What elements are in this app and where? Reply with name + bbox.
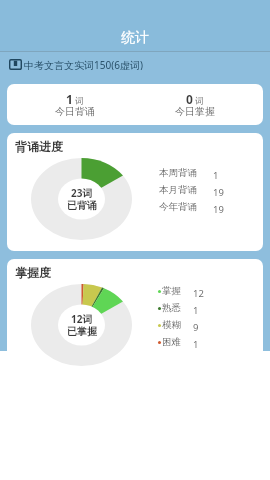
staticText: 今日背诵 xyxy=(55,105,95,118)
staticText: 词 xyxy=(195,96,204,107)
button[interactable]: Word book xyxy=(9,58,143,70)
staticText: 统计 xyxy=(121,29,149,47)
staticText: 词 xyxy=(75,96,84,107)
button[interactable]: 困难 xyxy=(158,336,263,348)
staticText: 1 xyxy=(213,169,219,181)
staticText: 1 xyxy=(193,304,199,316)
button[interactable]: 本月背诵 xyxy=(159,184,263,196)
button[interactable]: 掌握 xyxy=(158,285,263,297)
staticText: 中考文言文实词150(6虚词) xyxy=(24,58,143,70)
staticText: 19 xyxy=(213,186,224,198)
staticText: 1 xyxy=(193,338,199,350)
staticText: 熟悉 xyxy=(162,302,181,314)
staticText: 19 xyxy=(213,203,224,215)
staticText: 已背诵 xyxy=(67,199,97,212)
staticText: 困难 xyxy=(162,336,181,348)
staticText: 今日掌握 xyxy=(175,105,215,118)
staticText: 1 xyxy=(66,91,73,107)
staticText: 掌握 xyxy=(162,285,181,297)
staticText: 今年背诵 xyxy=(159,201,197,213)
other: Word book xyxy=(9,59,22,70)
staticText: 本周背诵 xyxy=(159,167,197,179)
staticText: 9 xyxy=(193,321,199,333)
staticText: 12 xyxy=(193,287,204,299)
staticText: 掌握度 xyxy=(15,265,51,280)
staticText: 0 xyxy=(186,91,193,107)
staticText: 已掌握 xyxy=(67,325,97,338)
staticText: 本月背诵 xyxy=(159,184,197,196)
staticText: 背诵进度 xyxy=(15,139,63,154)
button[interactable]: 0 xyxy=(135,84,255,125)
staticText: 模糊 xyxy=(162,319,181,331)
button[interactable]: 今年背诵 xyxy=(159,201,263,213)
button[interactable]: 本周背诵 xyxy=(159,167,263,179)
staticText: 23词 xyxy=(71,186,93,200)
button[interactable]: 1 xyxy=(15,84,135,125)
button[interactable]: 熟悉 xyxy=(158,302,263,314)
staticText: 12词 xyxy=(71,312,93,326)
button[interactable]: 模糊 xyxy=(158,319,263,331)
